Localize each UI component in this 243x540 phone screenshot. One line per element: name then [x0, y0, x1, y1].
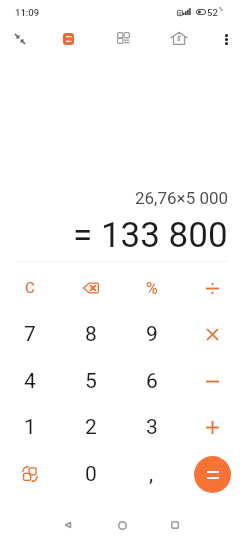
staticText: ,	[149, 462, 154, 487]
button[interactable]: 3	[121, 404, 182, 450]
button[interactable]: %	[121, 265, 182, 311]
button[interactable]: Plus	[182, 404, 243, 450]
staticText: 7	[24, 322, 36, 347]
button[interactable]: 8	[60, 311, 121, 357]
button[interactable]: Recents	[161, 511, 189, 539]
staticText: 6	[146, 369, 158, 394]
button[interactable]: 7	[0, 311, 60, 357]
button[interactable]: 4	[0, 358, 60, 404]
staticText: 52	[207, 7, 218, 18]
staticText: 1	[24, 415, 36, 440]
staticText: 5	[85, 369, 97, 394]
staticText: %	[219, 6, 224, 12]
button[interactable]: Divide	[182, 265, 243, 311]
button[interactable]: Minus	[182, 358, 243, 404]
staticText: 4	[24, 369, 36, 394]
button[interactable]: 6	[121, 358, 182, 404]
button[interactable]: 1	[0, 404, 60, 450]
button[interactable]: 9	[121, 311, 182, 357]
staticText: 8	[85, 322, 97, 347]
staticText: = 133 800	[73, 215, 228, 256]
staticText: 26,76×5 000	[135, 188, 229, 208]
staticText: 2	[85, 415, 97, 440]
button[interactable]: Collapse	[6, 25, 34, 53]
button[interactable]: 5	[60, 358, 121, 404]
button[interactable]: Home	[108, 511, 136, 539]
button[interactable]: Mortgage	[165, 24, 193, 52]
button[interactable]: C	[0, 265, 60, 311]
staticText: 9	[146, 322, 158, 347]
staticText: 11:09	[15, 7, 40, 18]
button[interactable]: Converter	[109, 24, 137, 52]
button[interactable]: Calculator	[54, 25, 82, 53]
button[interactable]: Backspace	[60, 265, 121, 311]
button[interactable]: ,	[121, 451, 182, 497]
staticText: C	[25, 279, 35, 297]
button[interactable]: 0	[60, 451, 121, 497]
button[interactable]: 2	[60, 404, 121, 450]
staticText: %	[146, 279, 158, 298]
button[interactable]: Convert	[0, 451, 60, 497]
button[interactable]: Multiply	[182, 311, 243, 357]
staticText: 3	[146, 415, 158, 440]
button[interactable]: More options	[212, 25, 240, 53]
button[interactable]: Equals	[194, 456, 231, 493]
button[interactable]: Back	[54, 511, 82, 539]
staticText: 0	[85, 462, 97, 487]
